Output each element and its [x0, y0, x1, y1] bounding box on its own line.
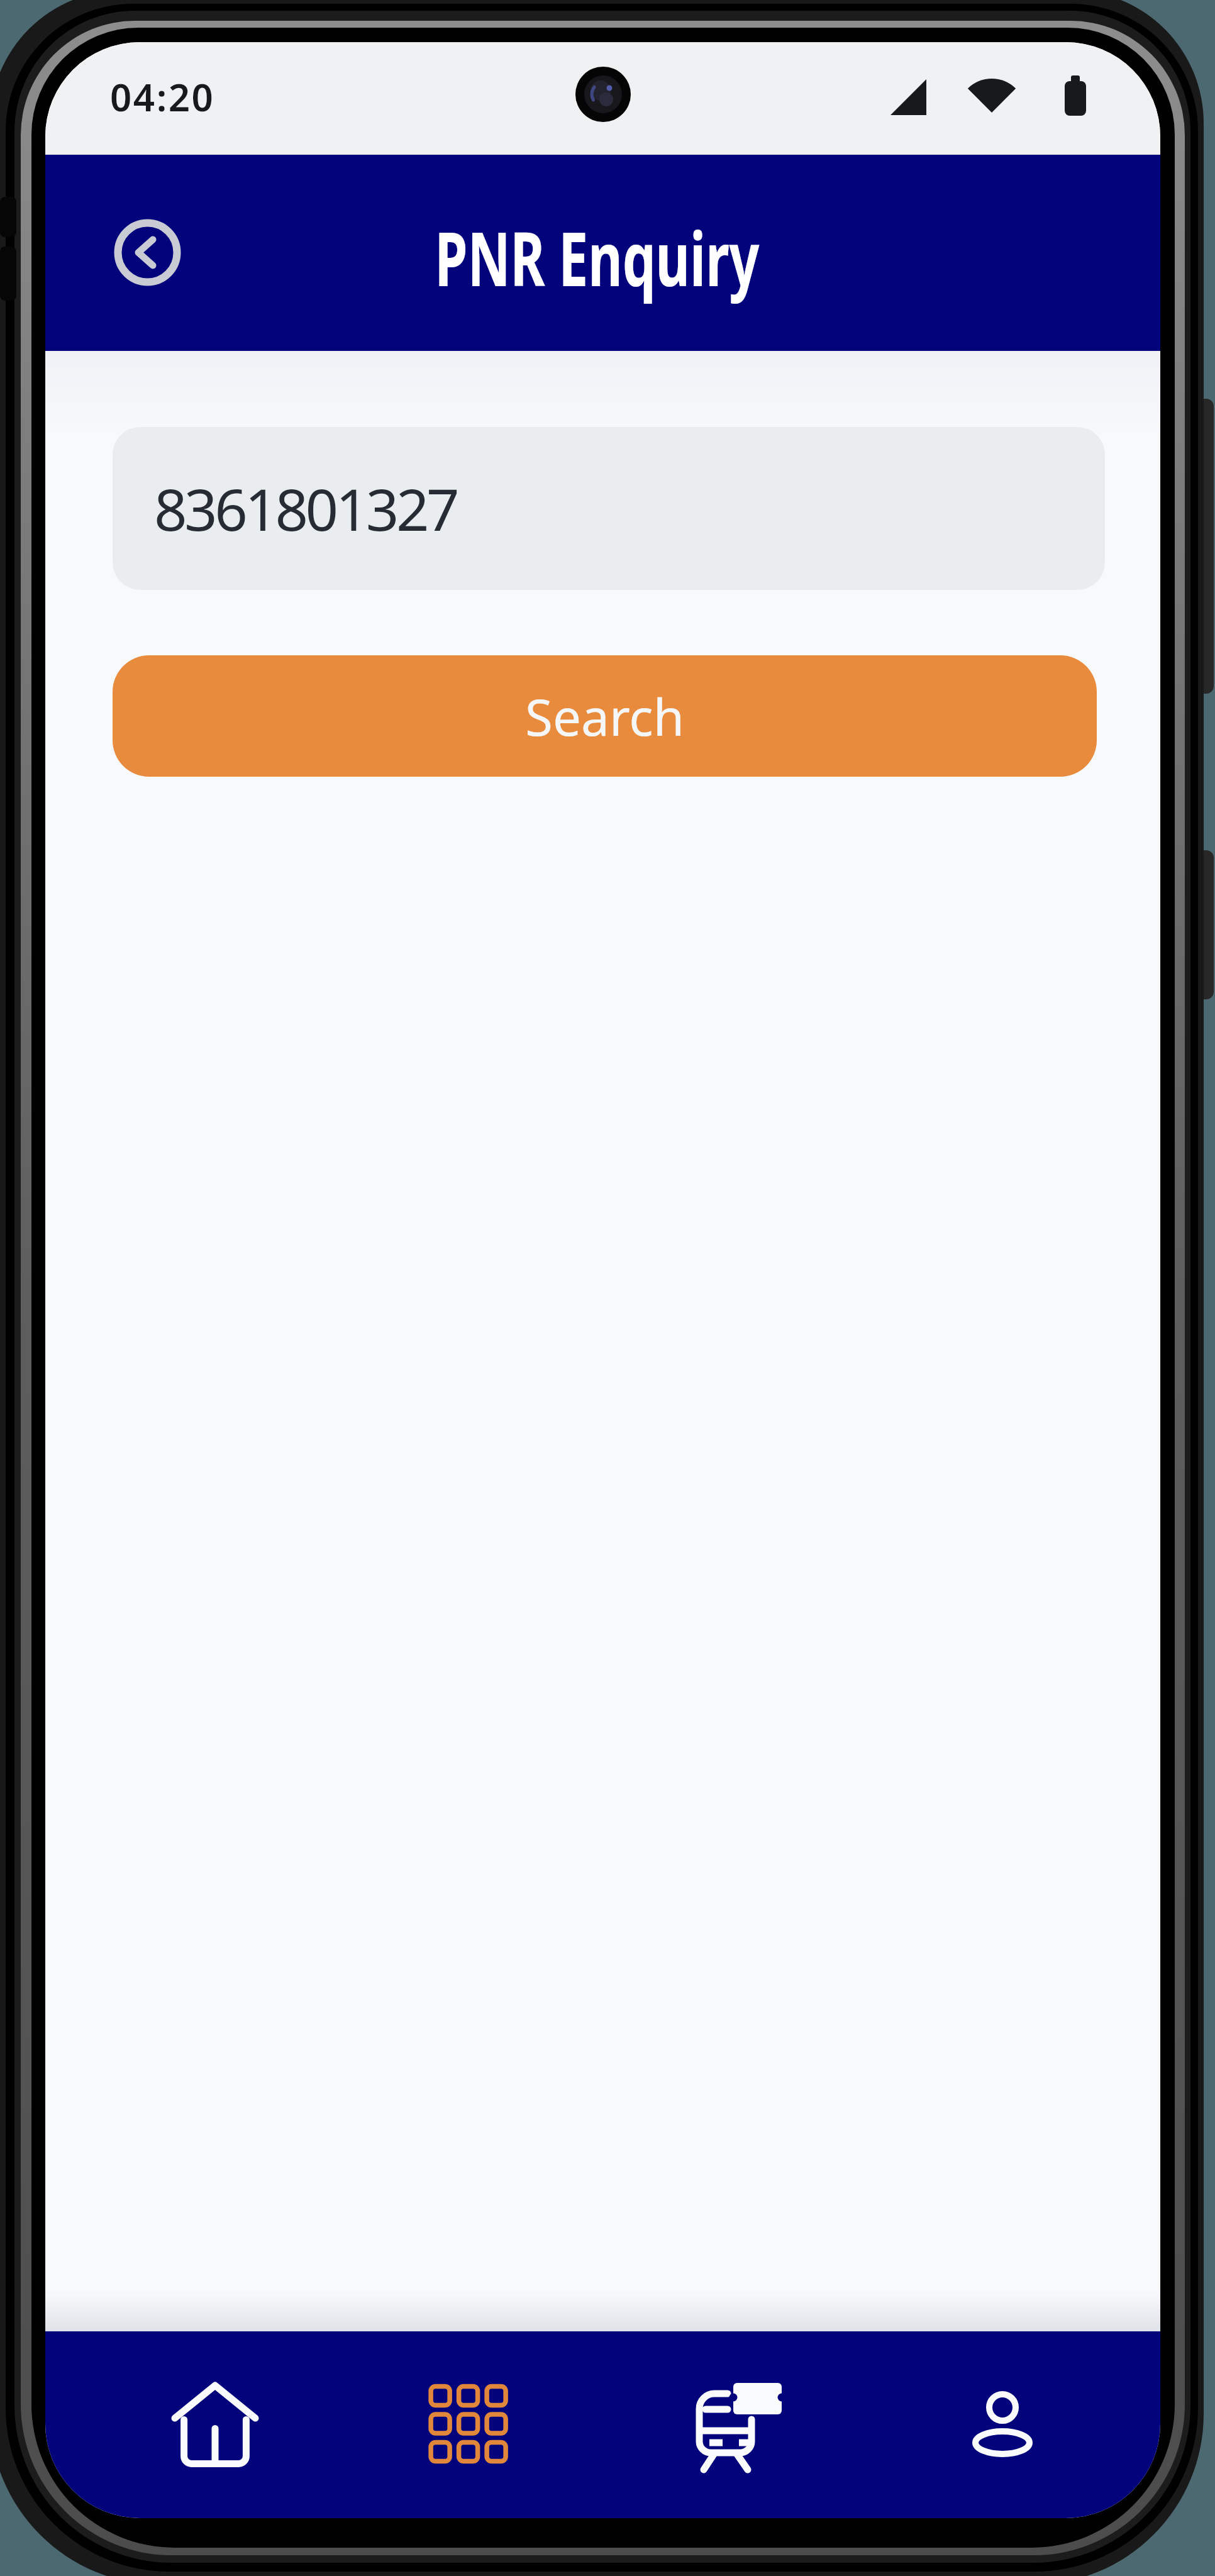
button[interactable] [106, 211, 189, 294]
staticText: Search [525, 682, 685, 750]
staticText: 04:20 [110, 71, 215, 123]
staticText: 8361801327 [154, 469, 457, 548]
button[interactable] [602, 2331, 881, 2518]
button[interactable]: Search [113, 655, 1097, 777]
button[interactable] [324, 2331, 602, 2518]
button[interactable] [881, 2331, 1160, 2518]
button[interactable] [45, 2331, 324, 2518]
button[interactable]: 8361801327 [113, 427, 1105, 590]
staticText: PNR Enquiry [435, 207, 759, 308]
